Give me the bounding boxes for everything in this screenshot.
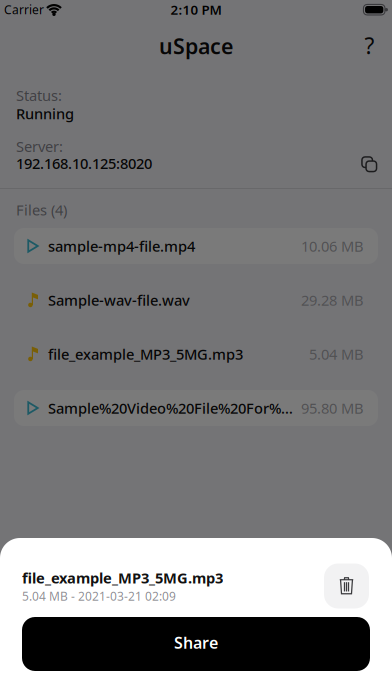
- staticText: 10.06 MB: [301, 236, 364, 256]
- staticText: Status:: [16, 86, 62, 105]
- staticText: 95.80 MB: [301, 398, 364, 418]
- button[interactable]: Help: [354, 30, 384, 60]
- staticText: 192.168.10.125:8020: [16, 154, 152, 173]
- staticText: Server:: [16, 137, 63, 156]
- staticText: 5.04 MB - 2021-03-21 02:09: [22, 588, 176, 604]
- staticText: file_example_MP3_5MG.mp3: [22, 568, 223, 588]
- button[interactable]: Sample%20Video%20File%20For%2...: [14, 390, 378, 426]
- staticText: file_example_MP3_5MG.mp3: [48, 344, 243, 364]
- staticText: uSpace: [159, 32, 233, 60]
- staticText: Share: [174, 632, 218, 653]
- button[interactable]: Share: [22, 617, 370, 671]
- staticText: 5.04 MB: [309, 344, 364, 364]
- staticText: sample-mp4-file.mp4: [48, 236, 195, 256]
- staticText: Carrier: [4, 1, 44, 17]
- button[interactable]: Sample-wav-file.wav: [14, 282, 378, 318]
- staticText: ?: [364, 30, 374, 60]
- button[interactable]: sample-mp4-file.mp4: [14, 228, 378, 264]
- button[interactable]: Copy server address: [361, 156, 377, 172]
- staticText: Sample%20Video%20File%20For%2...: [48, 398, 293, 418]
- staticText: Sample-wav-file.wav: [48, 290, 190, 310]
- button[interactable]: file_example_MP3_5MG.mp3: [14, 336, 378, 372]
- staticText: Files (4): [16, 200, 67, 220]
- staticText: Running: [16, 104, 74, 123]
- staticText: 2:10 PM: [170, 1, 221, 18]
- staticText: 29.28 MB: [301, 290, 364, 310]
- button[interactable]: Delete file: [324, 563, 369, 608]
